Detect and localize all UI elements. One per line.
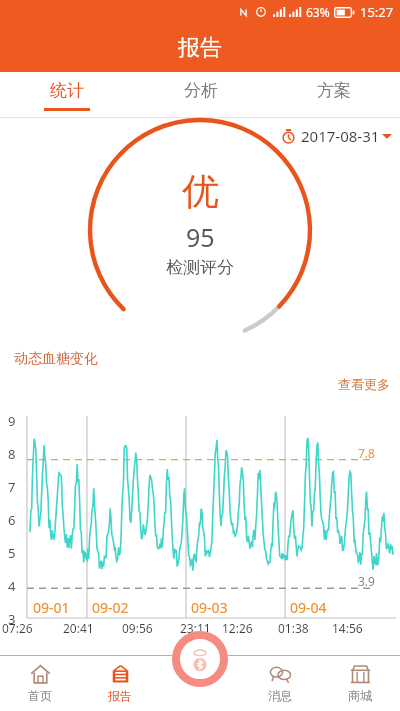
staticText: 7 [8,478,16,496]
staticText: 63% [306,4,330,20]
staticText: 3.9 [358,573,375,589]
staticText: 2017-08-31 [301,126,380,146]
staticText: 09-03 [191,598,228,617]
staticText: 12:26 [222,620,253,636]
staticText: 95 [186,220,215,254]
staticText: 商城 [348,688,372,703]
staticText: 01:38 [278,620,309,636]
staticText: 23:11 [180,620,211,636]
staticText: 09-01 [33,598,70,617]
staticText: 9 [8,412,16,430]
staticText: 4 [8,577,16,595]
staticText: 检测评分 [166,257,234,278]
staticText: 8 [8,445,16,463]
staticText: 首页 [28,688,52,703]
staticText: 3 [8,610,16,628]
staticText: 方案 [317,80,351,101]
button[interactable]: 查看更多 [338,376,390,392]
staticText: 消息 [268,688,292,703]
staticText: 统计 [50,80,84,101]
staticText: 15:27 [360,3,394,21]
button[interactable]: 首页 [0,655,80,711]
staticText: 6 [8,511,16,529]
staticText: 09-02 [92,598,129,617]
button[interactable]: 2017-08-31 [281,126,392,146]
staticText: 报告 [178,34,222,62]
button[interactable]: 统计 [0,72,134,118]
staticText: 09-04 [290,598,327,617]
staticText: 14:56 [332,620,363,636]
button[interactable]: 方案 [267,72,400,118]
button[interactable]: 分析 [134,72,267,118]
staticText: 09:56 [122,620,153,636]
staticText: 7.8 [358,445,375,461]
staticText: 分析 [184,80,218,101]
button[interactable]: Connect device [168,631,232,687]
staticText: 5 [8,544,16,562]
staticText: 07:26 [2,620,33,636]
button[interactable]: 报告 [80,655,160,711]
staticText: 动态血糖变化 [14,350,98,368]
staticText: 报告 [108,688,132,703]
button[interactable]: 商城 [320,655,400,711]
staticText: 优 [182,168,219,215]
staticText: 20:41 [63,620,94,636]
button[interactable]: 消息 [240,655,320,711]
